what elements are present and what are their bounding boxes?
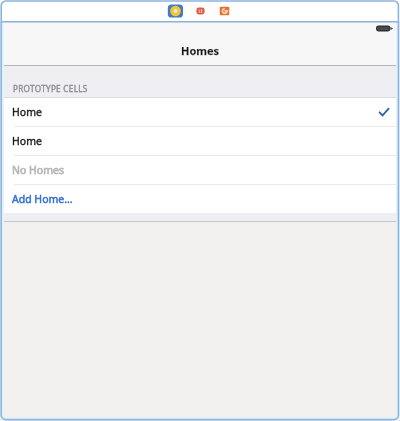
staticText: Home <box>12 134 42 148</box>
staticText: No Homes <box>12 163 64 177</box>
other: Battery full <box>376 25 393 32</box>
staticText: PROTOTYPE CELLS <box>13 83 88 94</box>
staticText: Homes <box>181 43 220 58</box>
button[interactable]: Storyboard file <box>219 6 230 16</box>
staticText: No Homes <box>12 163 64 177</box>
button[interactable]: Home <box>4 98 396 126</box>
button[interactable]: Home <box>4 127 396 155</box>
staticText: Add Home... <box>12 192 73 206</box>
button[interactable]: Run destination <box>196 7 205 15</box>
staticText: Add Home... <box>12 192 73 206</box>
staticText: Home <box>12 134 42 148</box>
staticText: Home <box>12 105 42 119</box>
button[interactable]: Xcode <box>167 4 184 18</box>
button[interactable]: Homes <box>181 43 220 58</box>
button[interactable]: No Homes <box>4 156 396 184</box>
staticText: Home <box>12 105 42 119</box>
staticText: Homes <box>181 43 220 58</box>
staticText: PROTOTYPE CELLS <box>13 83 88 94</box>
button[interactable]: Add Home... <box>4 185 396 213</box>
other: Selected <box>379 108 389 116</box>
